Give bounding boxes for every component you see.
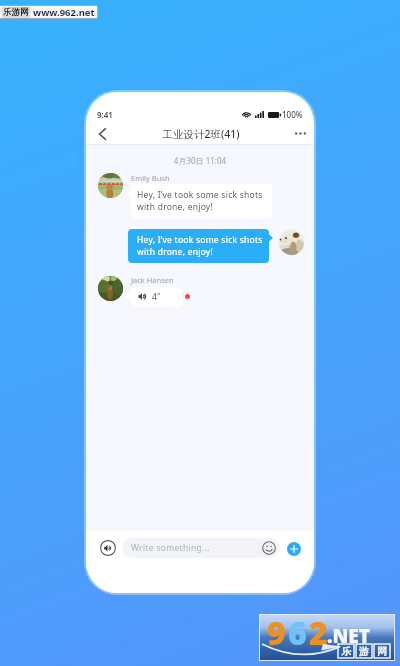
staticText: www.962.net — [33, 6, 95, 19]
staticText: Jack Hansen — [131, 275, 174, 285]
staticText: 9:41 — [97, 109, 113, 120]
staticText: 工业设计2班(41) — [162, 127, 240, 141]
button[interactable]: Write something... — [122, 538, 280, 558]
button[interactable]: 4″ — [127, 287, 182, 306]
staticText: 2 — [309, 611, 328, 655]
staticText: 4月30日 11:04 — [86, 155, 314, 166]
staticText: 游 — [359, 645, 369, 658]
staticText: 网 — [377, 645, 387, 658]
button[interactable]: More options — [282, 122, 314, 145]
staticText: 100% — [282, 109, 303, 120]
button[interactable]: Add attachment — [287, 542, 301, 556]
button[interactable]: Voice message — [100, 540, 116, 556]
staticText: 乐 — [341, 645, 351, 658]
staticText: 9 — [267, 611, 288, 655]
staticText: Hey, I’ve took some sick shots with dron… — [137, 234, 263, 258]
button[interactable]: Back — [86, 122, 118, 145]
staticText: Hey, I’ve took some sick shots with dron… — [137, 189, 263, 213]
staticText: 4″ — [152, 291, 161, 303]
button[interactable]: Hey, I’ve took some sick shots with dron… — [128, 229, 273, 263]
staticText: .NET — [327, 623, 370, 649]
staticText: 6 — [288, 611, 309, 655]
staticText: Emily Bush — [131, 173, 170, 183]
staticText: Write something... — [131, 542, 210, 554]
button[interactable]: Hey, I’ve took some sick shots with dron… — [127, 184, 272, 218]
staticText: 乐游网 — [3, 7, 29, 18]
button[interactable]: Emoji — [262, 541, 276, 555]
